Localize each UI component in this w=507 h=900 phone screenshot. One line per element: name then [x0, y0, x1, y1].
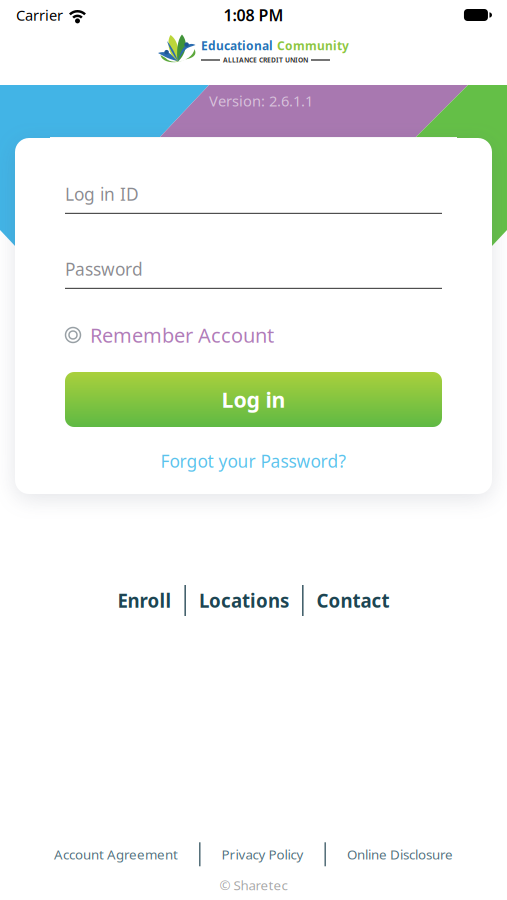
staticText: Online Disclosure: [347, 845, 453, 863]
button[interactable]: Forgot your Password?: [65, 446, 442, 476]
staticText: Log in: [221, 385, 285, 414]
staticText: Community: [277, 37, 349, 53]
staticText: Forgot your Password?: [160, 449, 346, 472]
button[interactable]: Log in: [65, 372, 442, 427]
button[interactable]: Contact: [304, 586, 403, 614]
staticText: Carrier: [16, 5, 63, 25]
button[interactable]: Enroll: [104, 586, 184, 614]
button[interactable]: Remember Account: [65, 324, 442, 346]
staticText: 1:08 PM: [223, 4, 283, 26]
staticText: Account Agreement: [54, 845, 178, 863]
staticText: Log in ID: [65, 182, 139, 205]
staticText: Remember Account: [90, 322, 274, 348]
staticText: Locations: [199, 588, 289, 613]
staticText: Contact: [317, 588, 390, 613]
button[interactable]: Locations: [186, 586, 302, 614]
button[interactable]: Online Disclosure: [326, 842, 474, 866]
staticText: Privacy Policy: [221, 845, 303, 863]
staticText: © Sharetec: [219, 876, 287, 894]
button[interactable]: Privacy Policy: [200, 842, 324, 866]
staticText: ALLIANCE CREDIT UNION: [223, 56, 308, 64]
staticText: Enroll: [117, 588, 171, 613]
staticText: Educational: [201, 37, 273, 53]
staticText: Version: 2.6.1.1: [209, 91, 313, 110]
button[interactable]: Account Agreement: [33, 842, 199, 866]
staticText: Password: [65, 257, 143, 280]
